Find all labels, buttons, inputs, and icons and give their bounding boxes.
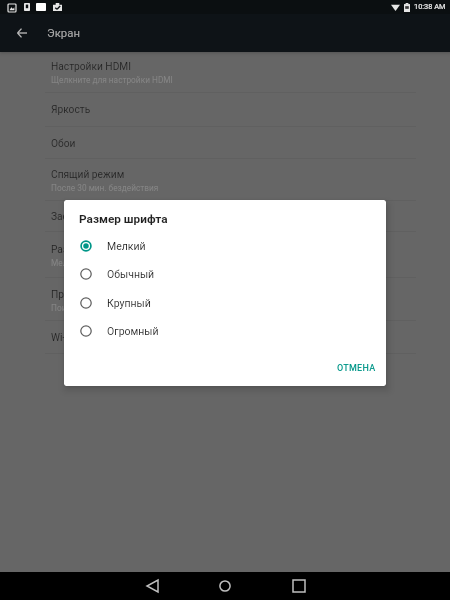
button[interactable]: Настройки HDMI: [0, 51, 450, 93]
staticText: Огромный: [107, 325, 159, 337]
staticText: Проецирование: [51, 289, 128, 301]
staticText: Щелкните для настройки HDMI: [51, 75, 173, 85]
staticText: Настройки HDMI: [51, 61, 131, 73]
staticText: Обои: [51, 138, 76, 150]
button[interactable]: ОТМЕНА: [331, 358, 382, 379]
staticText: 10:38 AM: [414, 2, 446, 11]
staticText: Обычный: [107, 268, 155, 280]
staticText: Размер шрифта: [51, 244, 127, 256]
button[interactable]: Back: [17, 28, 27, 38]
staticText: Мелкий: [51, 258, 82, 268]
button[interactable]: Обои: [0, 127, 450, 160]
staticText: Яркость: [51, 104, 91, 116]
staticText: Крупный: [107, 297, 151, 309]
staticText: Экран: [47, 26, 80, 39]
button[interactable]: Back: [138, 572, 166, 600]
button[interactable]: Мелкий: [64, 232, 386, 260]
button[interactable]: Wi-Fi дисплей: [0, 321, 450, 354]
staticText: Поиск устройств…: [51, 303, 123, 313]
staticText: ОТМЕНА: [337, 363, 376, 374]
button[interactable]: Проецирование: [0, 278, 450, 321]
staticText: Заставка: [51, 211, 96, 223]
button[interactable]: Яркость: [0, 93, 450, 127]
button[interactable]: Размер шрифта: [0, 232, 450, 277]
staticText: Спящий режим: [51, 169, 125, 181]
staticText: Wi-Fi дисплей: [51, 332, 117, 344]
staticText: После 30 мин. бездействия: [51, 183, 159, 193]
button[interactable]: Recents: [285, 572, 313, 600]
button[interactable]: Огромный: [64, 317, 386, 345]
staticText: Мелкий: [107, 240, 146, 252]
button[interactable]: Крупный: [64, 289, 386, 317]
button[interactable]: Home: [211, 572, 239, 600]
staticText: Размер шрифта: [79, 212, 168, 226]
button[interactable]: Заставка: [0, 201, 450, 233]
button[interactable]: Обычный: [64, 260, 386, 288]
button[interactable]: Спящий режим: [0, 159, 450, 200]
